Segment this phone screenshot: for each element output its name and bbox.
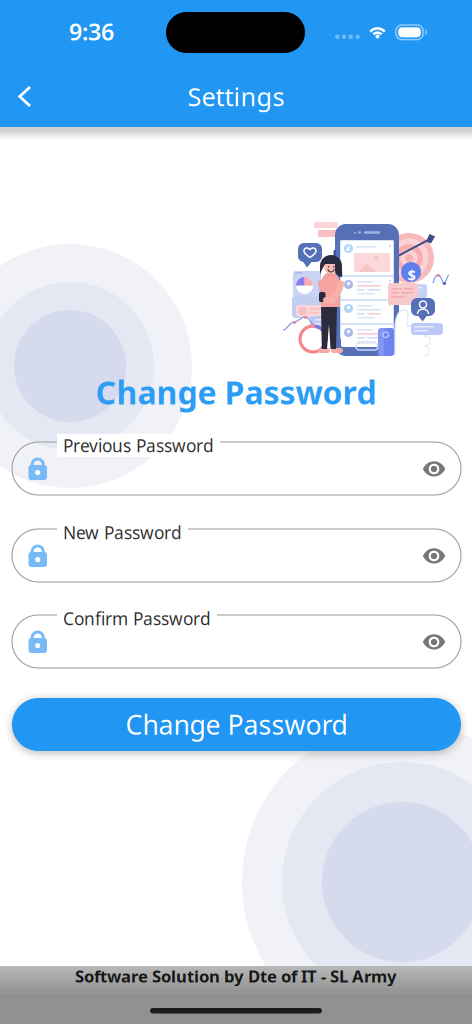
staticText: Settings: [187, 80, 284, 113]
button[interactable]: Change Password: [12, 698, 461, 751]
staticText: New Password: [63, 521, 182, 544]
button[interactable]: Show password: [412, 534, 456, 578]
staticText: $: [407, 265, 415, 284]
button[interactable]: Show password: [412, 620, 456, 664]
staticText: Software Solution by Dte of IT - SL Army: [75, 965, 397, 987]
staticText: 9:36: [69, 16, 114, 47]
staticText: Change Password: [95, 371, 376, 413]
staticText: Confirm Password: [63, 607, 211, 630]
staticText: Previous Password: [63, 434, 214, 457]
button[interactable]: Show password: [412, 447, 456, 491]
button[interactable]: New Password: [12, 520, 461, 582]
staticText: Change Password: [125, 707, 347, 742]
button[interactable]: Back: [2, 73, 48, 119]
button[interactable]: Confirm Password: [12, 606, 461, 668]
button[interactable]: Previous Password: [12, 433, 461, 495]
